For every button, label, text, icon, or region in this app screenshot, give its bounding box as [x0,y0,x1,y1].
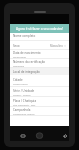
staticText: Série / Unidade [13,89,35,93]
button[interactable]: Nome completo [10,33,69,41]
staticText: Centro norte [13,82,28,85]
staticText: Masculino [50,44,63,48]
button[interactable]: Série / Unidade [10,87,69,97]
staticText: Número da certificação [13,60,46,64]
staticText: Local de integração [13,70,40,74]
button[interactable]: Agora é só fazer o seu cadastro! [10,24,69,33]
staticText: Data de nascimento [13,51,41,55]
staticText: 00000000 [13,64,25,67]
staticText: Placa / Chatiquia [13,99,37,103]
button[interactable]: Número da certificação [10,59,69,68]
staticText: São Sebastião - Res. [13,103,36,106]
staticText: Cadastrado Aberto [13,112,35,115]
staticText: Cidade [13,78,23,82]
staticText: Centro - Centro [13,93,31,96]
button[interactable]: Placa / Chatiquia [10,97,69,107]
staticText: Sexo [13,44,20,48]
button[interactable]: Recents [19,132,26,139]
button[interactable]: Sexo [10,41,69,50]
button[interactable]: Back [61,132,68,139]
staticText: Gabriel Campos [13,38,32,41]
staticText: Nome completo [13,34,36,38]
button[interactable]: Cidade [10,75,69,87]
staticText: 00/00/0000 [13,55,26,58]
button[interactable]: Data de nascimento [10,50,69,59]
button[interactable]: Home [35,131,44,140]
staticText: Campanhola [13,108,31,112]
button[interactable]: Local de integração [13,68,69,75]
staticText: Agora é só fazer o seu cadastro! [16,27,63,31]
button[interactable]: Campanhola [10,107,69,116]
